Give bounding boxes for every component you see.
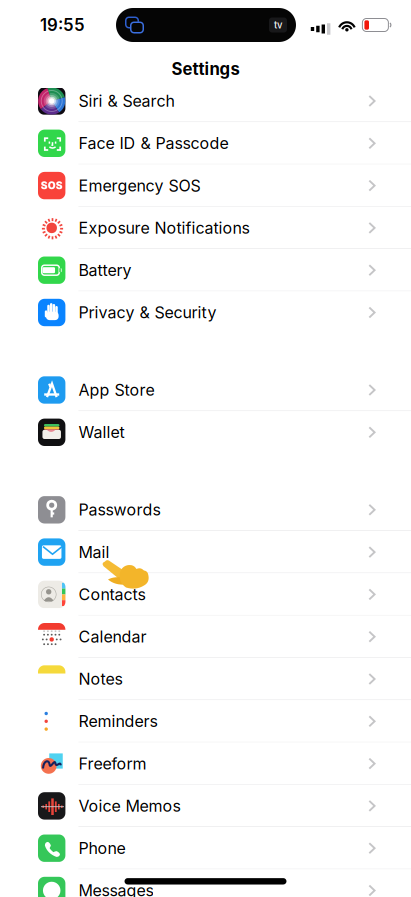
button[interactable]: Privacy & Security [0,291,411,334]
staticText: Freeform [78,754,146,773]
button[interactable]: Calendar [0,616,411,658]
button[interactable]: Exposure Notifications [0,207,411,249]
button[interactable]: App Store [0,369,411,411]
staticText: Reminders [78,712,157,731]
staticText: App Store [78,380,154,400]
staticText: Privacy & Security [78,303,216,322]
button[interactable]: Contacts [0,573,411,615]
button[interactable]: Wallet [0,411,411,453]
staticText: tv [274,19,282,31]
staticText: 19:55 [40,15,85,35]
staticText: Settings [171,59,239,79]
staticText: Calendar [78,627,146,646]
staticText: Phone [78,838,125,858]
staticText: Wallet [78,423,124,442]
button[interactable]: Voice Memos [0,785,411,827]
staticText: Exposure Notifications [78,218,249,238]
staticText: SOS [41,179,63,192]
button[interactable]: Reminders [0,700,411,742]
button[interactable]: Battery [0,249,411,291]
staticText: Notes [78,669,122,689]
staticText: Battery [78,260,131,280]
staticText: Face ID & Passcode [78,134,228,153]
staticText: Emergency SOS [78,176,200,195]
staticText: Voice Memos [78,796,180,816]
button[interactable]: Phone [0,827,411,869]
staticText: Mail [78,542,109,562]
staticText: Messages [78,881,153,897]
staticText: Contacts [78,585,145,604]
button[interactable]: Siri & Search [0,80,411,122]
button[interactable]: Freeform [0,742,411,785]
staticText: Siri & Search [78,91,174,111]
button[interactable]: Passwords [0,489,411,531]
staticText: Passwords [78,500,160,519]
button[interactable]: Notes [0,658,411,700]
button[interactable]: Mail [0,531,411,573]
button[interactable]: SOS [0,164,411,207]
button[interactable]: Messages [0,869,411,897]
button[interactable]: Face ID & Passcode [0,122,411,164]
